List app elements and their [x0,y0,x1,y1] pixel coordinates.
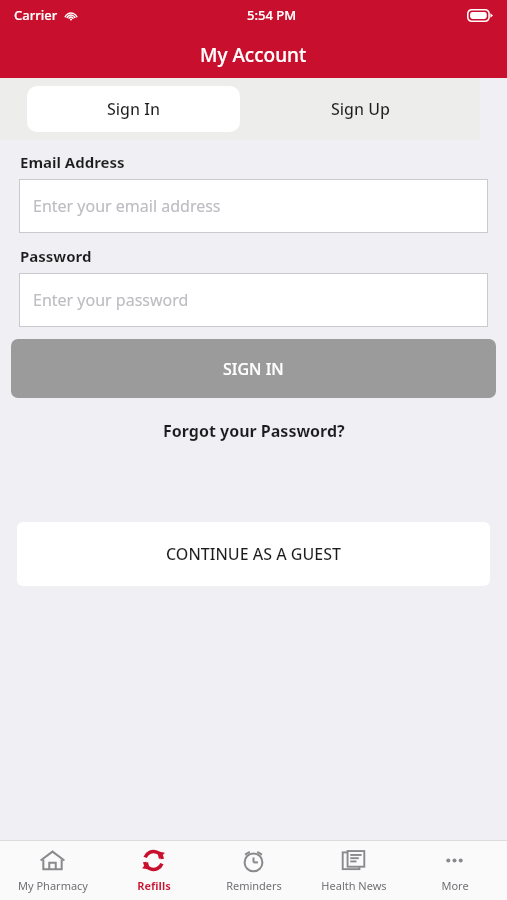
button[interactable]: Sign In [27,86,240,132]
staticText: 5:54 PM [247,6,297,24]
button[interactable]: Forgot your Password? [0,420,507,442]
button[interactable]: Enter your email address [19,179,488,233]
staticText: Sign Up [331,98,390,120]
button[interactable]: More [407,840,502,900]
staticText: My Account [200,42,307,68]
button[interactable]: Health News [306,840,401,900]
staticText: CONTINUE AS A GUEST [166,543,341,565]
staticText: Sign In [107,98,160,120]
staticText: More [441,878,469,893]
staticText: Enter your email address [33,195,221,217]
staticText: My Pharmacy [18,878,88,893]
staticText: Password [20,246,92,266]
button[interactable]: My Pharmacy [5,840,100,900]
button[interactable]: Sign Up [240,78,480,140]
button[interactable]: Enter your password [19,273,488,327]
staticText: Email Address [20,152,125,172]
staticText: Carrier [14,6,58,24]
staticText: Enter your password [33,289,189,311]
staticText: Forgot your Password? [163,420,345,442]
button[interactable]: CONTINUE AS A GUEST [17,522,490,586]
staticText: Refills [137,878,171,893]
button[interactable]: Reminders [206,840,301,900]
staticText: SIGN IN [223,358,284,380]
staticText: Health News [321,878,387,893]
button[interactable]: SIGN IN [11,339,496,398]
staticText: Reminders [226,878,282,893]
button[interactable]: Refills [106,840,201,900]
